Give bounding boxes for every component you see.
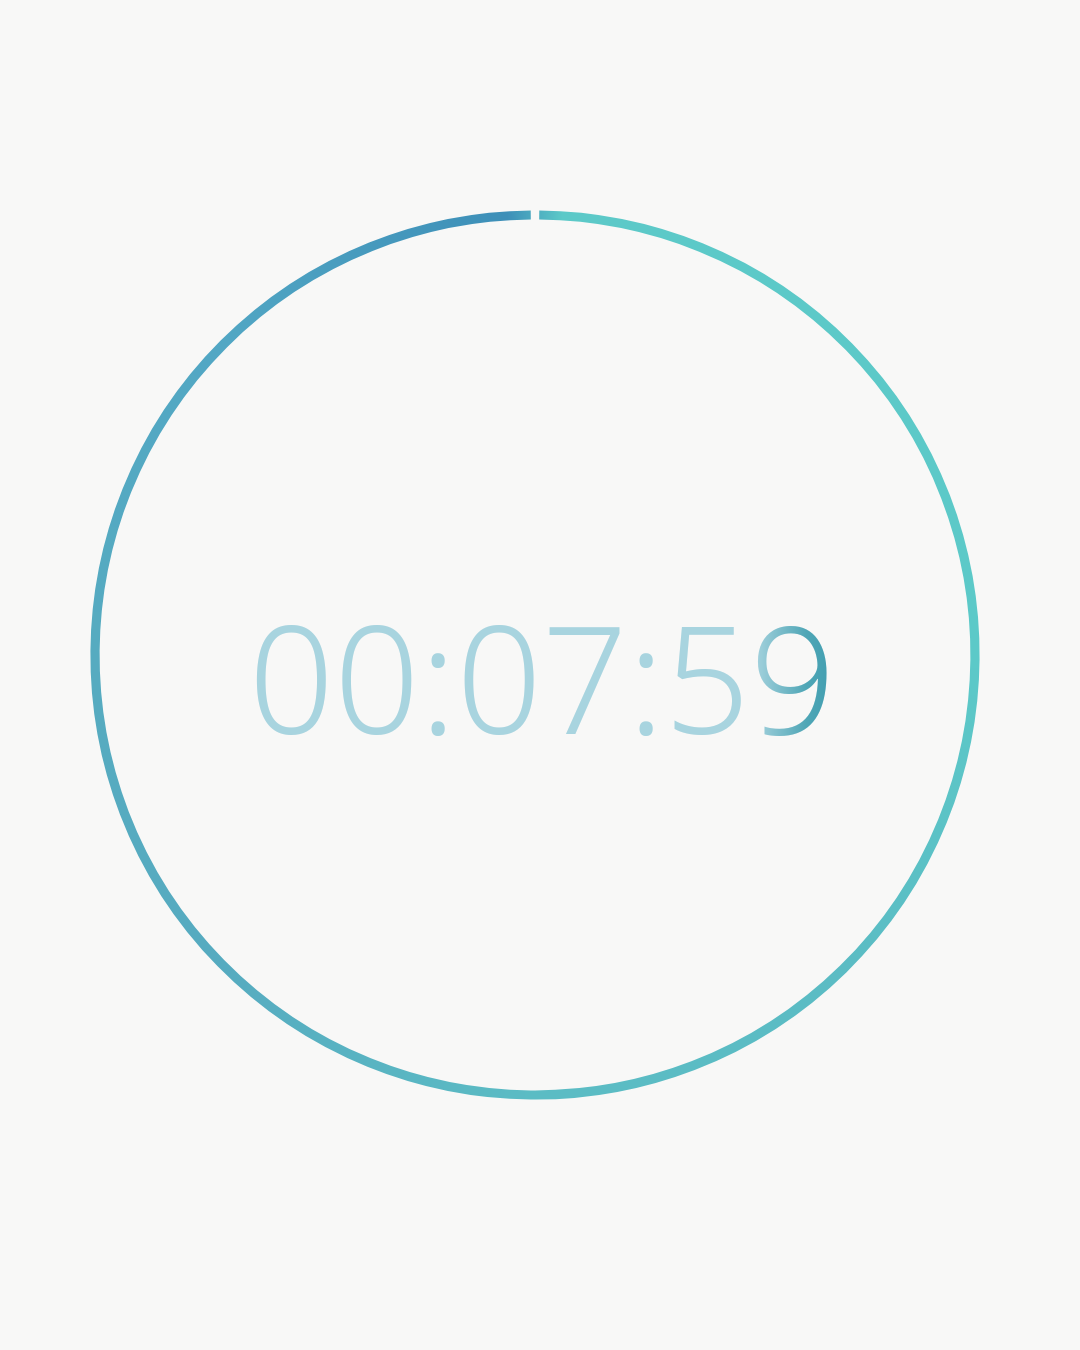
button[interactable]: Timer, 00:07:59 remaining [0,0,1080,1350]
button[interactable]: 00:07:59 [248,574,836,778]
